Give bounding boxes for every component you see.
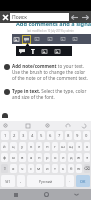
button[interactable]: з bbox=[76, 142, 82, 151]
staticText: ш bbox=[61, 144, 65, 150]
staticText: ф bbox=[3, 155, 7, 161]
button[interactable]: м bbox=[36, 164, 42, 173]
staticText: м bbox=[37, 166, 41, 172]
button[interactable]: Поиск bbox=[10, 13, 69, 21]
staticText: 5 bbox=[40, 133, 43, 139]
staticText: в bbox=[21, 155, 24, 161]
button[interactable]: а bbox=[28, 153, 34, 162]
button[interactable]: с bbox=[28, 164, 34, 173]
button[interactable]: б bbox=[68, 164, 74, 173]
staticText: ⌫ bbox=[84, 166, 90, 171]
button[interactable]: Русский bbox=[27, 175, 64, 187]
button[interactable]: е bbox=[36, 142, 42, 151]
button[interactable]: , bbox=[17, 175, 25, 187]
button[interactable]: я bbox=[10, 164, 17, 173]
button[interactable]: д bbox=[68, 153, 74, 162]
staticText: л bbox=[62, 155, 65, 161]
button[interactable]: 2 bbox=[11, 131, 18, 140]
button[interactable]: Redo bbox=[79, 121, 88, 130]
staticText: ь bbox=[62, 166, 65, 172]
button[interactable]: ь bbox=[60, 164, 66, 173]
button[interactable]: в bbox=[19, 153, 26, 162]
button[interactable]: 7 bbox=[56, 131, 63, 140]
staticText: 7 bbox=[58, 133, 61, 139]
staticText: T bbox=[31, 47, 35, 56]
staticText: 6 bbox=[49, 133, 52, 139]
button[interactable]: ч bbox=[19, 164, 26, 173]
button[interactable]: . bbox=[66, 175, 74, 187]
staticText: . bbox=[69, 178, 71, 184]
button[interactable]: 5 bbox=[38, 131, 45, 140]
staticText: ⇧ bbox=[3, 166, 7, 171]
staticText: OK bbox=[80, 179, 86, 184]
staticText: е bbox=[38, 144, 41, 150]
button[interactable]: Undo bbox=[63, 121, 72, 130]
staticText: 3 bbox=[22, 133, 25, 139]
staticText: Add note/comment to your text. Use the b… bbox=[12, 63, 89, 81]
staticText: т bbox=[54, 166, 56, 172]
staticText: к bbox=[30, 144, 33, 150]
button[interactable]: Shift bbox=[1, 164, 8, 173]
staticText: п bbox=[38, 155, 41, 161]
button[interactable]: й bbox=[1, 142, 8, 151]
button[interactable]: ц bbox=[10, 142, 17, 151]
button[interactable]: 3 bbox=[20, 131, 27, 140]
button[interactable]: ш bbox=[60, 142, 66, 151]
staticText: 1 bbox=[4, 133, 7, 139]
button[interactable]: п bbox=[36, 153, 42, 162]
button[interactable]: 4 bbox=[29, 131, 36, 140]
staticText: Type in text. Select the type, color and… bbox=[12, 88, 89, 100]
button[interactable]: Emoji bbox=[43, 121, 52, 130]
button[interactable]: Previous match bbox=[69, 11, 80, 23]
button[interactable]: 9 bbox=[74, 131, 81, 140]
staticText: г bbox=[54, 144, 56, 150]
button[interactable]: 8 bbox=[65, 131, 72, 140]
staticText: 0 bbox=[85, 133, 88, 139]
button[interactable]: ы bbox=[10, 153, 17, 162]
button[interactable]: Keyboard settings bbox=[0, 121, 11, 130]
staticText: ю bbox=[77, 166, 81, 172]
button[interactable]: щ bbox=[68, 142, 74, 151]
button[interactable]: х bbox=[84, 142, 90, 151]
button[interactable]: 1 bbox=[1, 131, 9, 140]
button[interactable]: 0 bbox=[83, 131, 90, 140]
staticText: 9 bbox=[76, 133, 79, 139]
button[interactable]: !#1 bbox=[1, 175, 15, 187]
button[interactable]: э bbox=[84, 153, 90, 162]
button[interactable]: ю bbox=[76, 164, 82, 173]
button[interactable]: у bbox=[19, 142, 26, 151]
button[interactable]: Home bbox=[31, 189, 61, 200]
staticText: Add comments and a signature bbox=[16, 20, 91, 28]
staticText: и bbox=[46, 166, 49, 172]
button[interactable]: Backspace bbox=[84, 164, 90, 173]
button[interactable]: Back bbox=[61, 189, 91, 200]
staticText: ч bbox=[21, 166, 24, 172]
button[interactable]: т bbox=[52, 164, 58, 173]
button[interactable]: ф bbox=[1, 153, 8, 162]
staticText: а bbox=[30, 155, 33, 161]
staticText: у bbox=[21, 144, 24, 150]
button[interactable]: Close find bar bbox=[0, 11, 10, 23]
button[interactable]: 6 bbox=[47, 131, 54, 140]
staticText: , bbox=[20, 178, 22, 184]
staticText: с bbox=[30, 166, 33, 172]
staticText: 2 bbox=[13, 133, 16, 139]
button[interactable]: р bbox=[44, 153, 50, 162]
button[interactable]: о bbox=[52, 153, 58, 162]
staticText: ы bbox=[12, 155, 16, 161]
staticText: ж bbox=[77, 155, 81, 161]
button[interactable]: Search bbox=[76, 175, 90, 187]
staticText: 4 bbox=[31, 133, 34, 139]
button[interactable]: г bbox=[52, 142, 58, 151]
button[interactable]: и bbox=[44, 164, 50, 173]
button[interactable]: к bbox=[28, 142, 34, 151]
button[interactable]: ж bbox=[76, 153, 82, 162]
button[interactable]: Clipboard bbox=[23, 121, 32, 130]
staticText: б bbox=[70, 166, 73, 172]
button[interactable]: Next match bbox=[80, 11, 91, 23]
button[interactable]: Recent apps bbox=[0, 189, 31, 200]
button[interactable]: н bbox=[44, 142, 50, 151]
button[interactable]: л bbox=[60, 153, 66, 162]
staticText: last modified on 10 July 2019 by admin bbox=[27, 29, 74, 33]
staticText: ц bbox=[12, 144, 15, 150]
